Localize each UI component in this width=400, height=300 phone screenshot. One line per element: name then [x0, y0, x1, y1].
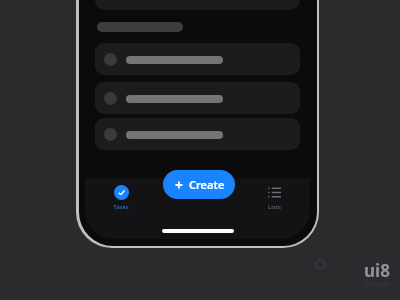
button[interactable]: Tasks	[107, 183, 135, 213]
button[interactable]	[95, 82, 300, 114]
staticText: ui8	[364, 259, 390, 282]
button[interactable]: Create	[163, 170, 235, 199]
staticText: Create	[189, 177, 225, 192]
button[interactable]	[95, 43, 300, 75]
button[interactable]: Lists	[261, 183, 288, 213]
staticText: Tasks	[113, 203, 129, 211]
staticText: ui8.com	[363, 280, 390, 290]
button[interactable]	[95, 118, 300, 150]
staticText: Lists	[268, 203, 281, 211]
